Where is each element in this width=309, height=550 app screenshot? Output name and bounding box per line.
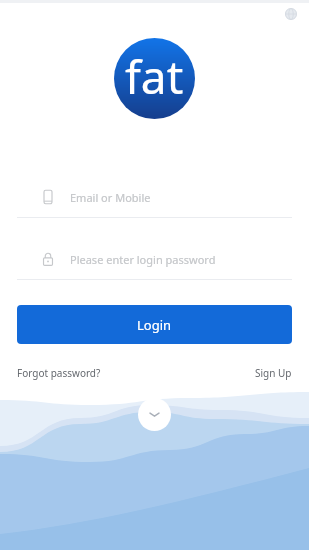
staticText: Email or Mobile <box>70 190 151 205</box>
staticText: Sign Up <box>255 366 292 380</box>
staticText: Forgot password? <box>17 366 101 380</box>
staticText: Please enter login password <box>70 252 216 267</box>
button[interactable]: Expand <box>138 398 171 431</box>
staticText: Login <box>137 316 172 334</box>
button[interactable]: Login <box>17 305 292 344</box>
button[interactable]: Please enter login password <box>17 246 292 272</box>
button[interactable]: Forgot password? <box>17 366 101 380</box>
button[interactable]: Sign Up <box>255 366 292 380</box>
button[interactable]: Language <box>282 5 299 22</box>
staticText: fat <box>125 45 184 108</box>
button[interactable]: Email or Mobile <box>17 184 292 210</box>
